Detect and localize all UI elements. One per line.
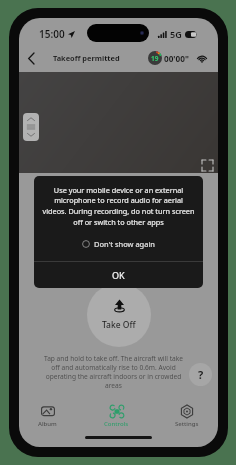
button[interactable]: Take Off (87, 283, 151, 347)
button[interactable]: Album (32, 403, 63, 430)
staticText: Use your mobile device or an external mi… (42, 185, 195, 227)
staticText: 00'00" (164, 53, 189, 64)
staticText: Controls (104, 420, 129, 428)
button[interactable]: Settings (169, 403, 205, 430)
button[interactable]: Gimbal control (23, 113, 39, 141)
staticText: Album (38, 420, 57, 428)
staticText: Don't show again (94, 239, 155, 249)
staticText: Settings (175, 420, 199, 428)
button[interactable]: OK (34, 262, 203, 288)
button[interactable]: Don't show again (34, 239, 203, 249)
staticText: Tap and hold to take off. The aircraft w… (42, 354, 185, 390)
staticText: OK (112, 269, 125, 281)
button[interactable]: Help (189, 363, 212, 386)
staticText: ? (198, 367, 204, 382)
button[interactable]: Controls (98, 403, 135, 430)
staticText: 15:00 (39, 27, 65, 41)
staticText: Take Off (102, 319, 136, 331)
other: Wi-Fi (196, 53, 208, 63)
staticText: Takeoff permitted (53, 53, 120, 63)
staticText: 5G (170, 28, 182, 40)
button[interactable]: Fullscreen (200, 158, 215, 173)
staticText: 19 (151, 54, 159, 63)
button[interactable]: Back (19, 44, 43, 72)
